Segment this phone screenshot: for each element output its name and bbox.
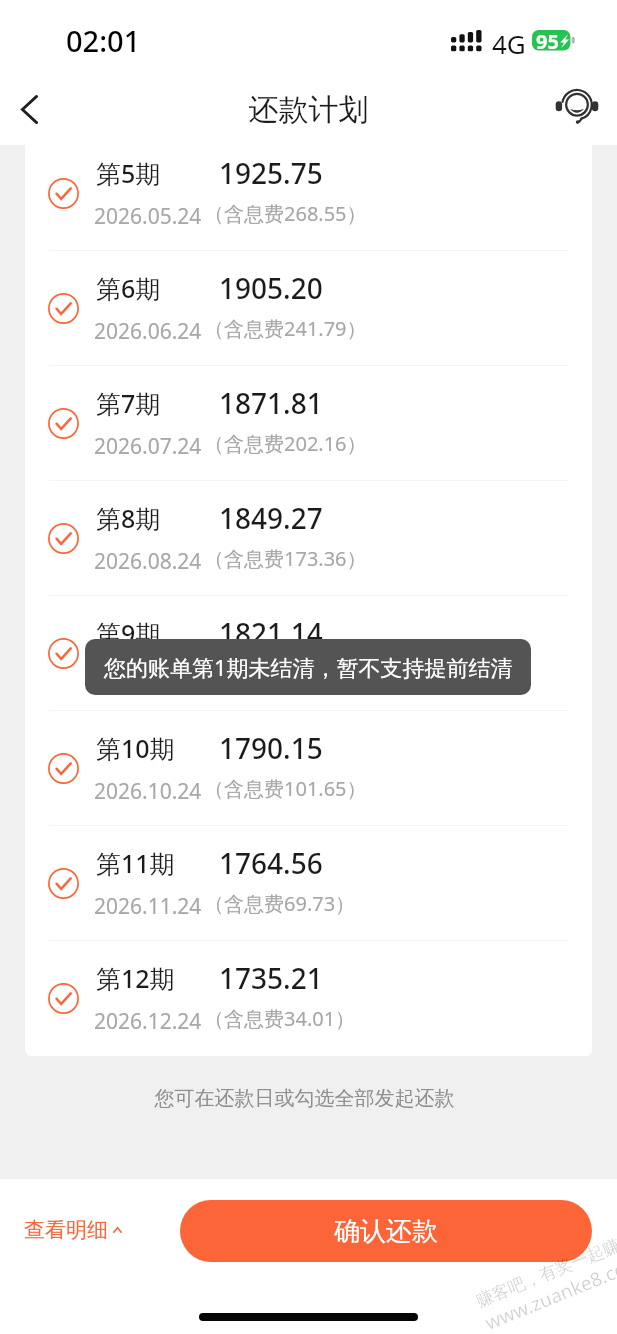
staticText: 2026.12.24 — [94, 1007, 202, 1036]
staticText: 2026.07.24 — [94, 432, 202, 461]
staticText: 2026.05.24 — [94, 202, 202, 231]
staticText: 第5期 — [96, 156, 161, 190]
staticText: 您的账单第1期未结清，暂不支持提前结清 — [104, 652, 513, 682]
button[interactable]: 第10期 — [25, 711, 592, 826]
staticText: （含息费268.55） — [204, 200, 367, 227]
staticText: （含息费101.65） — [204, 775, 367, 802]
staticText: 查看明细 — [24, 1217, 108, 1243]
staticText: 95 — [536, 28, 559, 55]
staticText: 确认还款 — [334, 1215, 438, 1248]
staticText: 1849.27 — [219, 499, 323, 537]
staticText: （含息费69.73） — [204, 890, 356, 917]
button[interactable]: 查看明细 — [24, 1217, 122, 1243]
button[interactable]: Back — [1, 81, 57, 137]
staticText: 2026.11.24 — [94, 892, 202, 921]
staticText: 赚客吧，有奖一起赚 — [473, 1235, 617, 1312]
staticText: 第8期 — [96, 501, 161, 535]
staticText: 1871.81 — [219, 384, 323, 422]
button[interactable]: 第7期 — [25, 366, 592, 481]
button[interactable]: 第11期 — [25, 826, 592, 941]
staticText: （含息费138.95） — [204, 660, 367, 687]
staticText: 1735.21 — [219, 959, 323, 997]
staticText: （含息费241.79） — [204, 315, 367, 342]
button[interactable]: 第8期 — [25, 481, 592, 596]
staticText: 02:01 — [66, 21, 141, 60]
staticText: 第6期 — [96, 271, 161, 305]
staticText: 第11期 — [96, 846, 175, 880]
staticText: 1790.15 — [219, 729, 323, 767]
staticText: 1821.14 — [219, 614, 323, 652]
staticText: 2026.08.24 — [94, 547, 202, 576]
staticText: （含息费173.36） — [204, 545, 367, 572]
staticText: 2026.09.24 — [94, 662, 202, 691]
staticText: 1764.56 — [219, 844, 323, 882]
staticText: （含息费34.01） — [204, 1005, 356, 1032]
button[interactable]: 确认还款 — [180, 1200, 592, 1262]
staticText: （含息费202.16） — [204, 430, 367, 457]
staticText: www.zuanke8.com — [481, 1249, 617, 1334]
staticText: 1905.20 — [219, 269, 323, 307]
staticText: 您可在还款日或勾选全部发起还款 — [0, 1086, 613, 1111]
button[interactable]: Customer service — [546, 73, 608, 135]
staticText: 第10期 — [96, 731, 175, 765]
staticText: 第9期 — [96, 616, 161, 650]
staticText: 4G — [492, 26, 526, 61]
staticText: 2026.10.24 — [94, 777, 202, 806]
staticText: 还款计划 — [0, 91, 617, 129]
button[interactable]: 第6期 — [25, 251, 592, 366]
button[interactable]: 第5期 — [25, 145, 592, 251]
button[interactable]: 第9期 — [25, 596, 592, 711]
staticText: 2026.06.24 — [94, 317, 202, 346]
staticText: 第7期 — [96, 386, 161, 420]
staticText: 1925.75 — [219, 154, 323, 192]
button[interactable]: 第12期 — [25, 941, 592, 1047]
staticText: 第12期 — [96, 961, 175, 995]
